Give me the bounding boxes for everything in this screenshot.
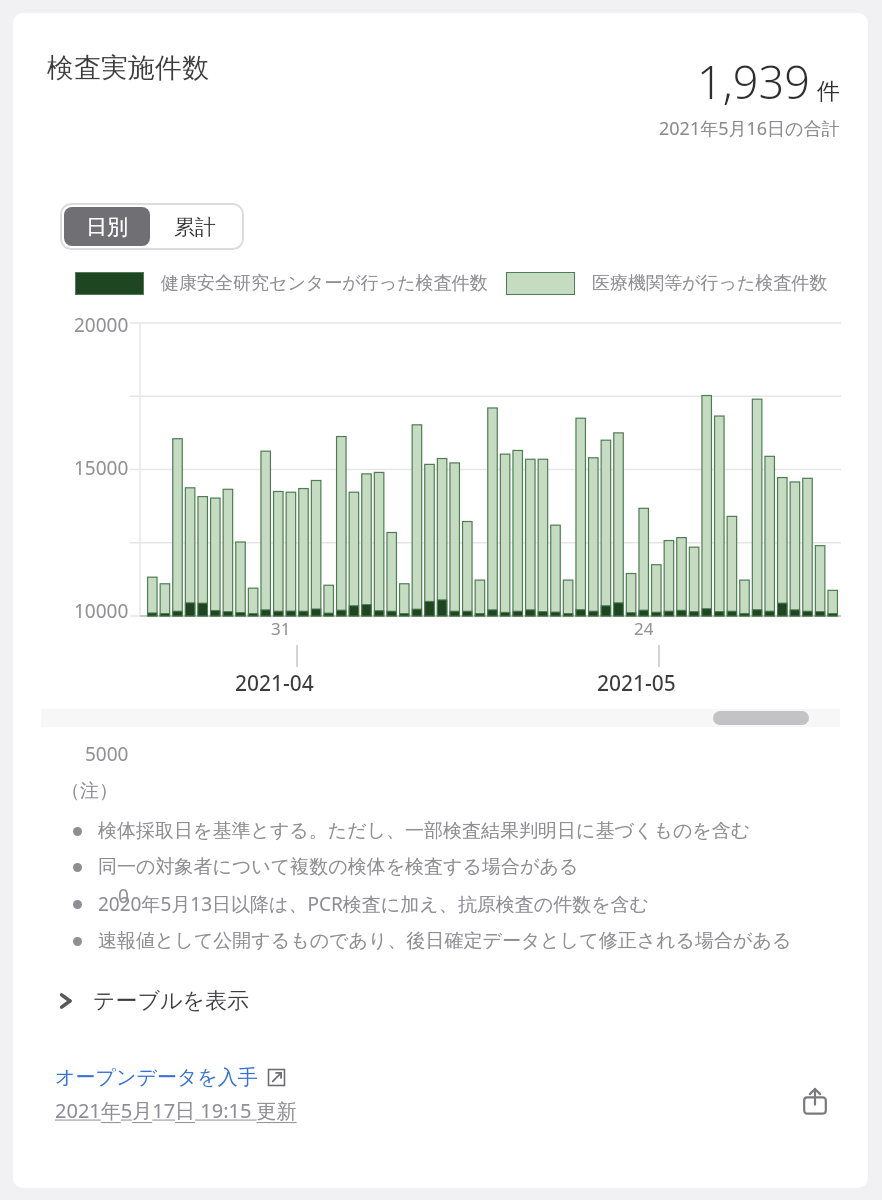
staticText: 健康安全研究センターが行った検査件数: [161, 272, 488, 295]
staticText: 検体採取日を基準とする。ただし、一部検査結果判明日に基づくものを含む: [98, 819, 751, 843]
staticText: 件: [817, 77, 840, 106]
button[interactable]: オープンデータを入手: [55, 1065, 286, 1090]
staticText: 31: [271, 617, 291, 640]
button[interactable]: 累計: [150, 207, 240, 246]
staticText: 10000: [74, 598, 129, 620]
staticText: テーブルを表示: [93, 987, 250, 1015]
staticText: 20000: [74, 312, 129, 334]
staticText: 2021-05: [597, 669, 676, 698]
staticText: 2021-04: [235, 669, 314, 698]
staticText: 5000: [85, 741, 129, 763]
staticText: （注）: [61, 779, 118, 803]
staticText: 2021年5月17日 19:15 更新: [55, 1097, 297, 1124]
staticText: 日別: [86, 214, 128, 240]
staticText: 速報値として公開するものであり、後日確定データとして修正される場合がある: [98, 929, 792, 953]
staticText: 検査実施件数: [47, 51, 209, 85]
staticText: 2021年5月16日の合計: [659, 116, 840, 141]
other: 外部リンク: [267, 1068, 286, 1087]
staticText: 1,939: [697, 51, 810, 112]
staticText: オープンデータを入手: [55, 1065, 258, 1090]
staticText: 0: [118, 883, 129, 905]
staticText: 累計: [174, 214, 216, 240]
button[interactable]: 日別: [64, 207, 150, 246]
staticText: 医療機関等が行った検査件数: [592, 272, 828, 295]
button[interactable]: テーブルを表示: [49, 981, 256, 1021]
button[interactable]: 共有: [792, 1078, 838, 1124]
staticText: 15000: [74, 455, 129, 477]
staticText: 同一の対象者について複数の検体を検査する場合がある: [98, 855, 579, 879]
staticText: 24: [634, 617, 654, 640]
staticText: 2020年5月13日以降は、PCR検査に加え、抗原検査の件数を含む: [98, 891, 650, 917]
